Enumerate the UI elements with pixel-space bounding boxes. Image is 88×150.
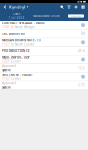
staticText: Cases bbox=[13, 12, 20, 16]
button[interactable]: CBC Account Bu bbox=[0, 30, 88, 38]
staticText: 1251 Center bbox=[2, 60, 21, 63]
staticText: System bbox=[2, 86, 11, 89]
staticText: 1 Jul 2023 bbox=[8, 16, 24, 20]
staticText: 1741 In North Wilmgtn bbox=[2, 25, 35, 29]
button[interactable]: Filter bbox=[67, 5, 71, 9]
staticText: Approved bbox=[2, 64, 16, 68]
button[interactable]: Add bbox=[74, 5, 78, 9]
button[interactable]: Back bbox=[1, 3, 9, 11]
button[interactable]: Approved bbox=[0, 64, 88, 72]
staticText: SHOW OPTIONS bbox=[71, 15, 81, 17]
staticText: 2.75 bbox=[78, 83, 85, 87]
staticText: System bbox=[2, 68, 11, 72]
staticText: MORGAN BROWN NOTE - 13 bbox=[2, 38, 41, 42]
button[interactable]: TAXI CENTER - VALUAT bbox=[0, 73, 88, 81]
button[interactable]: Approved bbox=[0, 81, 88, 89]
staticText: TAXI CENTER - VALUAT bbox=[2, 73, 33, 76]
staticText: 1127 Center bbox=[2, 77, 21, 80]
staticText: MEDIC INSPIRE - DISP bbox=[2, 56, 30, 59]
button[interactable]: PRO INDUCTION CE bbox=[0, 47, 88, 55]
staticText: PRO INDUCTION CE bbox=[2, 49, 29, 53]
staticText: 1121 In North Constit bbox=[2, 43, 34, 46]
staticText: Approved bbox=[2, 81, 16, 85]
button[interactable]: MORGAN BROWN NOTE - 13 bbox=[0, 38, 88, 46]
staticText: CBC Account Bu bbox=[2, 32, 25, 35]
staticText: 12.5 bbox=[78, 66, 85, 70]
staticText: CONTRACT SPECIALIST - INDUS bbox=[2, 21, 44, 25]
button[interactable]: SHOW OPTIONS bbox=[68, 14, 84, 18]
button[interactable]: CONTRACT SPECIALIST - INDUS bbox=[0, 21, 88, 29]
staticText: RD bbox=[81, 32, 85, 35]
button[interactable]: Menu bbox=[81, 5, 85, 9]
button[interactable]: Search bbox=[60, 5, 64, 9]
button[interactable]: MEDIC INSPIRE - DISP bbox=[0, 55, 88, 64]
staticText: 45.0 bbox=[78, 49, 85, 53]
staticText: Kyndryl bbox=[9, 4, 25, 10]
staticText: MANAGEMENT ORDER bbox=[33, 14, 60, 18]
button[interactable]: Switch account bbox=[25, 3, 30, 11]
